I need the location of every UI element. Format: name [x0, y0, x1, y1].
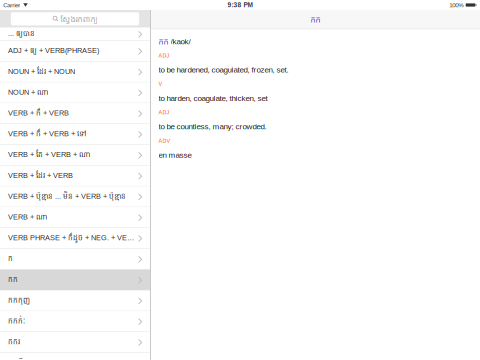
staticText: ADJ [158, 109, 169, 115]
staticText: NOUN + ណា [8, 87, 48, 98]
staticText: កករ [8, 337, 20, 348]
button[interactable]: NOUN + ណា [0, 82, 150, 103]
staticText: NOUN + ដែរ + NOUN [8, 67, 75, 77]
staticText: កក [8, 275, 18, 285]
staticText: ស្វែងរកពាក្យ [60, 13, 97, 24]
staticText: ក [8, 254, 13, 265]
button[interactable]: VERB + តែ + VERB + ណា [0, 145, 150, 166]
staticText: Carrier [3, 2, 20, 8]
button[interactable]: កករ [0, 332, 150, 353]
staticText: to be countless, many; crowded. [158, 122, 266, 131]
staticText: កកក់ៈ [8, 316, 25, 327]
staticText: ADJ + ឲ្យ + VERB(PHRASE) [8, 46, 99, 57]
staticText: កក [310, 14, 320, 25]
button[interactable]: VERB + ដែរ + VERB [0, 166, 150, 186]
staticText: VERB + ក៏ + VERB + ទៅ [8, 129, 86, 140]
button[interactable]: NOUN + ដែរ + NOUN [0, 62, 150, 82]
button[interactable]: កកក់ៈ [0, 311, 150, 332]
staticText: 9:38 PM [227, 1, 252, 9]
staticText: ADV [158, 138, 170, 144]
staticText: VERB + ដែរ + VERB [8, 171, 73, 181]
staticText: VERB + ក៏ + VERB [8, 108, 69, 119]
staticText: កកតិក [8, 358, 28, 360]
button[interactable]: ស្វែងរកពាក្យ [11, 12, 139, 25]
button[interactable]: VERB PHRASE + ក៏ដូច + NEG. + VE… [0, 228, 150, 249]
staticText: VERB + ណា [8, 212, 47, 223]
button[interactable]: ADJ + ឲ្យ + VERB(PHRASE) [0, 41, 150, 62]
button[interactable]: ... ឲ្យបាន [0, 28, 150, 41]
staticText: to be hardened, coagulated, frozen, set. [158, 65, 288, 74]
button[interactable]: VERB + ក៏ + VERB + ទៅ [0, 124, 150, 145]
button[interactable]: VERB + ណា [0, 207, 150, 228]
staticText: ... ឲ្យបាន [8, 29, 35, 40]
button[interactable]: VERB + ប៉ុន្មាន ... មិន + VERB + ប៉ុន្មា… [0, 186, 150, 207]
staticText: ADJ [158, 53, 169, 59]
button[interactable]: កកតិក [0, 353, 150, 360]
staticText: VERB + តែ + VERB + ណា [8, 150, 90, 161]
button[interactable]: កក [0, 270, 150, 290]
button[interactable]: ក [0, 249, 150, 270]
button[interactable]: កកកុញ [0, 290, 150, 311]
staticText: VERB PHRASE + ក៏ដូច + NEG. + VE… [8, 233, 134, 244]
staticText: /kaok/ [170, 37, 190, 46]
staticText: V [158, 81, 162, 87]
staticText: en masse [158, 150, 191, 159]
staticText: 100% [449, 2, 463, 8]
staticText: VERB + ប៉ុន្មាន ... មិន + VERB + ប៉ុន្មា… [8, 191, 126, 202]
staticText: to harden, coagulate, thicken, set [158, 94, 267, 103]
staticText: កក [158, 36, 168, 47]
staticText: កកកុញ [8, 295, 30, 306]
button[interactable]: VERB + ក៏ + VERB [0, 103, 150, 124]
